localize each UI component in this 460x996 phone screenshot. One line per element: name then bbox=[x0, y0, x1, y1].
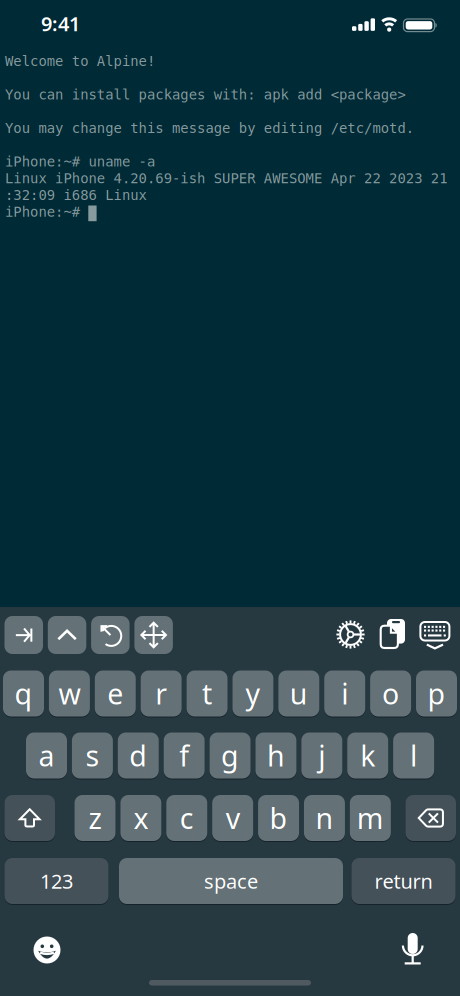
button[interactable]: Settings bbox=[336, 620, 365, 649]
button[interactable]: h bbox=[255, 732, 296, 779]
button[interactable]: Paste bbox=[381, 619, 406, 649]
staticText: s bbox=[85, 736, 99, 775]
staticText: x bbox=[133, 799, 148, 837]
button[interactable]: j bbox=[301, 732, 342, 779]
staticText: Linux iPhone 4.20.69-ish SUPER AWESOME A… bbox=[5, 170, 447, 186]
button[interactable]: o bbox=[370, 670, 411, 717]
button[interactable]: Hide keyboard bbox=[420, 622, 449, 650]
button[interactable]: Arrow keys bbox=[134, 616, 173, 654]
staticText: o bbox=[382, 674, 399, 713]
staticText: space bbox=[204, 867, 258, 895]
staticText: You can install packages with: apk add <… bbox=[5, 87, 405, 103]
staticText: t bbox=[202, 674, 212, 713]
button[interactable]: p bbox=[416, 670, 457, 717]
button[interactable]: w bbox=[49, 670, 90, 717]
staticText: q bbox=[14, 674, 32, 713]
staticText: b bbox=[270, 799, 288, 837]
button[interactable]: x bbox=[120, 794, 161, 841]
button[interactable]: y bbox=[232, 670, 273, 717]
staticText: 9:41 bbox=[41, 10, 80, 37]
button[interactable]: Tab bbox=[4, 616, 43, 654]
button[interactable]: 123 bbox=[4, 857, 108, 904]
button[interactable]: Dictate bbox=[402, 933, 424, 965]
staticText: u bbox=[290, 674, 308, 713]
staticText: iPhone:~# uname -a bbox=[5, 154, 155, 170]
button[interactable]: return bbox=[351, 857, 455, 904]
button[interactable]: b bbox=[258, 794, 299, 841]
button[interactable]: g bbox=[210, 732, 251, 779]
staticText: return bbox=[374, 867, 432, 895]
button[interactable]: Shift bbox=[4, 794, 55, 841]
staticText: m bbox=[357, 799, 384, 837]
staticText: You may change this message by editing /… bbox=[5, 120, 414, 136]
staticText: d bbox=[129, 736, 147, 775]
button[interactable]: z bbox=[74, 794, 115, 841]
staticText: p bbox=[427, 674, 445, 713]
staticText: f bbox=[179, 736, 189, 775]
button[interactable]: m bbox=[350, 794, 391, 841]
button[interactable]: f bbox=[164, 732, 205, 779]
button[interactable]: i bbox=[324, 670, 365, 717]
staticText: v bbox=[226, 799, 240, 837]
button[interactable]: Escape bbox=[91, 616, 130, 654]
button[interactable]: Control bbox=[48, 616, 86, 654]
button[interactable]: v bbox=[212, 794, 253, 841]
button[interactable]: l bbox=[393, 732, 434, 779]
staticText: y bbox=[245, 674, 260, 713]
staticText: :32:09 i686 Linux bbox=[5, 187, 147, 203]
staticText: i bbox=[341, 674, 348, 713]
button[interactable]: r bbox=[141, 670, 182, 717]
staticText: g bbox=[221, 736, 239, 775]
staticText: l bbox=[410, 736, 417, 775]
button[interactable]: Delete bbox=[405, 794, 456, 841]
staticText: z bbox=[88, 799, 101, 837]
button[interactable]: a bbox=[26, 732, 67, 779]
staticText: r bbox=[155, 674, 167, 713]
button[interactable]: Emoji bbox=[33, 936, 60, 963]
staticText: a bbox=[38, 736, 54, 775]
button[interactable]: space bbox=[119, 857, 343, 904]
button[interactable]: t bbox=[187, 670, 228, 717]
button[interactable]: q bbox=[3, 670, 44, 717]
staticText: iPhone:~# bbox=[5, 204, 88, 220]
button[interactable]: n bbox=[304, 794, 345, 841]
button[interactable]: s bbox=[72, 732, 113, 779]
staticText: n bbox=[315, 799, 333, 837]
staticText: h bbox=[267, 736, 285, 775]
staticText: c bbox=[180, 799, 194, 837]
button[interactable]: e bbox=[95, 670, 136, 717]
staticText: k bbox=[360, 736, 375, 775]
button[interactable]: d bbox=[118, 732, 159, 779]
button[interactable]: k bbox=[347, 732, 388, 779]
button[interactable]: c bbox=[166, 794, 207, 841]
button[interactable]: u bbox=[278, 670, 319, 717]
staticText: e bbox=[107, 674, 123, 713]
staticText: 123 bbox=[40, 867, 73, 895]
staticText: Welcome to Alpine! bbox=[5, 53, 155, 69]
staticText: j bbox=[318, 736, 325, 775]
staticText: w bbox=[58, 674, 80, 713]
